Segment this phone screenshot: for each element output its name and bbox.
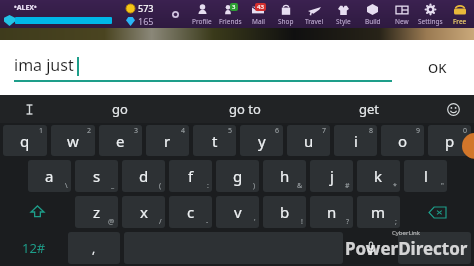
staticText: v	[234, 202, 242, 222]
button[interactable]: Build	[358, 0, 387, 28]
button[interactable]: f	[169, 160, 212, 192]
button[interactable]: Options	[168, 7, 182, 21]
staticText: ,	[92, 240, 96, 256]
button[interactable]: Profile	[188, 0, 216, 28]
staticText: d	[139, 166, 149, 186]
button[interactable]: u	[287, 125, 330, 156]
button[interactable]: Settings	[416, 0, 445, 28]
staticText: 5	[228, 126, 233, 136]
button[interactable]: p	[428, 125, 471, 156]
staticText: k	[374, 166, 383, 186]
button[interactable]: i	[334, 125, 377, 156]
staticText: h	[280, 166, 290, 186]
button[interactable]: d	[122, 160, 165, 192]
staticText: 0	[463, 126, 468, 136]
staticText: ?	[346, 217, 350, 227]
staticText: :	[207, 181, 209, 191]
button[interactable]: j	[310, 160, 353, 192]
button[interactable]: t	[193, 125, 236, 156]
button[interactable]: Text editing	[0, 95, 58, 123]
staticText: z	[93, 202, 101, 222]
button[interactable]: Travel	[300, 0, 329, 28]
staticText: r	[164, 131, 171, 151]
staticText: !	[301, 217, 303, 227]
button[interactable]: get	[307, 95, 432, 123]
button[interactable]: o	[381, 125, 424, 156]
staticText: _	[111, 181, 115, 191]
staticText: Style	[336, 17, 351, 26]
button[interactable]: g	[216, 160, 259, 192]
button[interactable]: q	[3, 125, 47, 156]
staticText: ima just	[14, 54, 74, 76]
button[interactable]: New	[387, 0, 416, 28]
button[interactable]: OK	[400, 40, 474, 95]
button[interactable]: Shift	[1, 194, 73, 230]
staticText: Profile	[192, 17, 212, 26]
staticText: x	[140, 202, 148, 222]
staticText: 7	[322, 126, 327, 136]
staticText: g	[233, 166, 243, 186]
staticText: 1	[39, 126, 44, 136]
staticText: m	[371, 202, 386, 222]
button[interactable]: z	[75, 196, 118, 228]
button[interactable]: 43	[244, 0, 272, 28]
button[interactable]: Backspace	[402, 194, 473, 230]
button[interactable]: go to	[182, 95, 307, 123]
staticText: 9	[416, 126, 421, 136]
staticText: go	[112, 100, 128, 118]
staticText: n	[327, 202, 337, 222]
button[interactable]: x	[122, 196, 165, 228]
button[interactable]: w	[51, 125, 95, 156]
button[interactable]: m	[357, 196, 400, 228]
button[interactable]: Style	[329, 0, 358, 28]
staticText: @	[108, 217, 115, 227]
button[interactable]: Voice input	[345, 230, 396, 266]
staticText: u	[304, 131, 314, 151]
button[interactable]: h	[263, 160, 306, 192]
button[interactable]: Enter	[398, 232, 471, 264]
staticText: Friends	[219, 17, 242, 26]
staticText: ;	[395, 217, 397, 227]
staticText: t	[212, 131, 218, 151]
staticText: 4	[181, 126, 186, 136]
button[interactable]: ,	[68, 232, 120, 264]
button[interactable]: b	[263, 196, 306, 228]
button[interactable]: e	[99, 125, 142, 156]
button[interactable]: 3	[216, 0, 244, 28]
button[interactable]: k	[357, 160, 400, 192]
staticText: #	[345, 181, 350, 191]
staticText: 573	[138, 2, 154, 14]
button[interactable]: c	[169, 196, 212, 228]
button[interactable]: Shop	[272, 0, 300, 28]
staticText: &	[297, 181, 303, 191]
staticText: get	[359, 100, 380, 118]
button[interactable]: Free	[445, 0, 474, 28]
staticText: y	[258, 131, 266, 151]
button[interactable]: v	[216, 196, 259, 228]
staticText: "	[441, 181, 444, 191]
staticText: go to	[229, 100, 261, 118]
staticText: •ALEX•	[14, 3, 37, 13]
staticText: j	[330, 166, 334, 186]
staticText: 6	[275, 126, 280, 136]
staticText: Free	[453, 17, 467, 26]
button[interactable]: go	[58, 95, 182, 123]
staticText: /	[159, 217, 162, 227]
staticText: \	[65, 181, 68, 191]
staticText: q	[20, 131, 30, 151]
staticText: (	[159, 181, 162, 191]
staticText: )	[253, 181, 256, 191]
staticText: PowerDirector	[345, 237, 468, 260]
button[interactable]: 12#	[1, 230, 66, 266]
staticText: 3	[232, 3, 236, 11]
button[interactable]: y	[240, 125, 283, 156]
button[interactable]: s	[75, 160, 118, 192]
button[interactable]: n	[310, 196, 353, 228]
staticText: Build	[365, 17, 381, 26]
button[interactable]: a	[28, 160, 71, 192]
button[interactable]: r	[146, 125, 189, 156]
staticText: *	[393, 181, 397, 191]
button[interactable]: Emoji	[432, 95, 474, 123]
button[interactable]: l	[404, 160, 447, 192]
